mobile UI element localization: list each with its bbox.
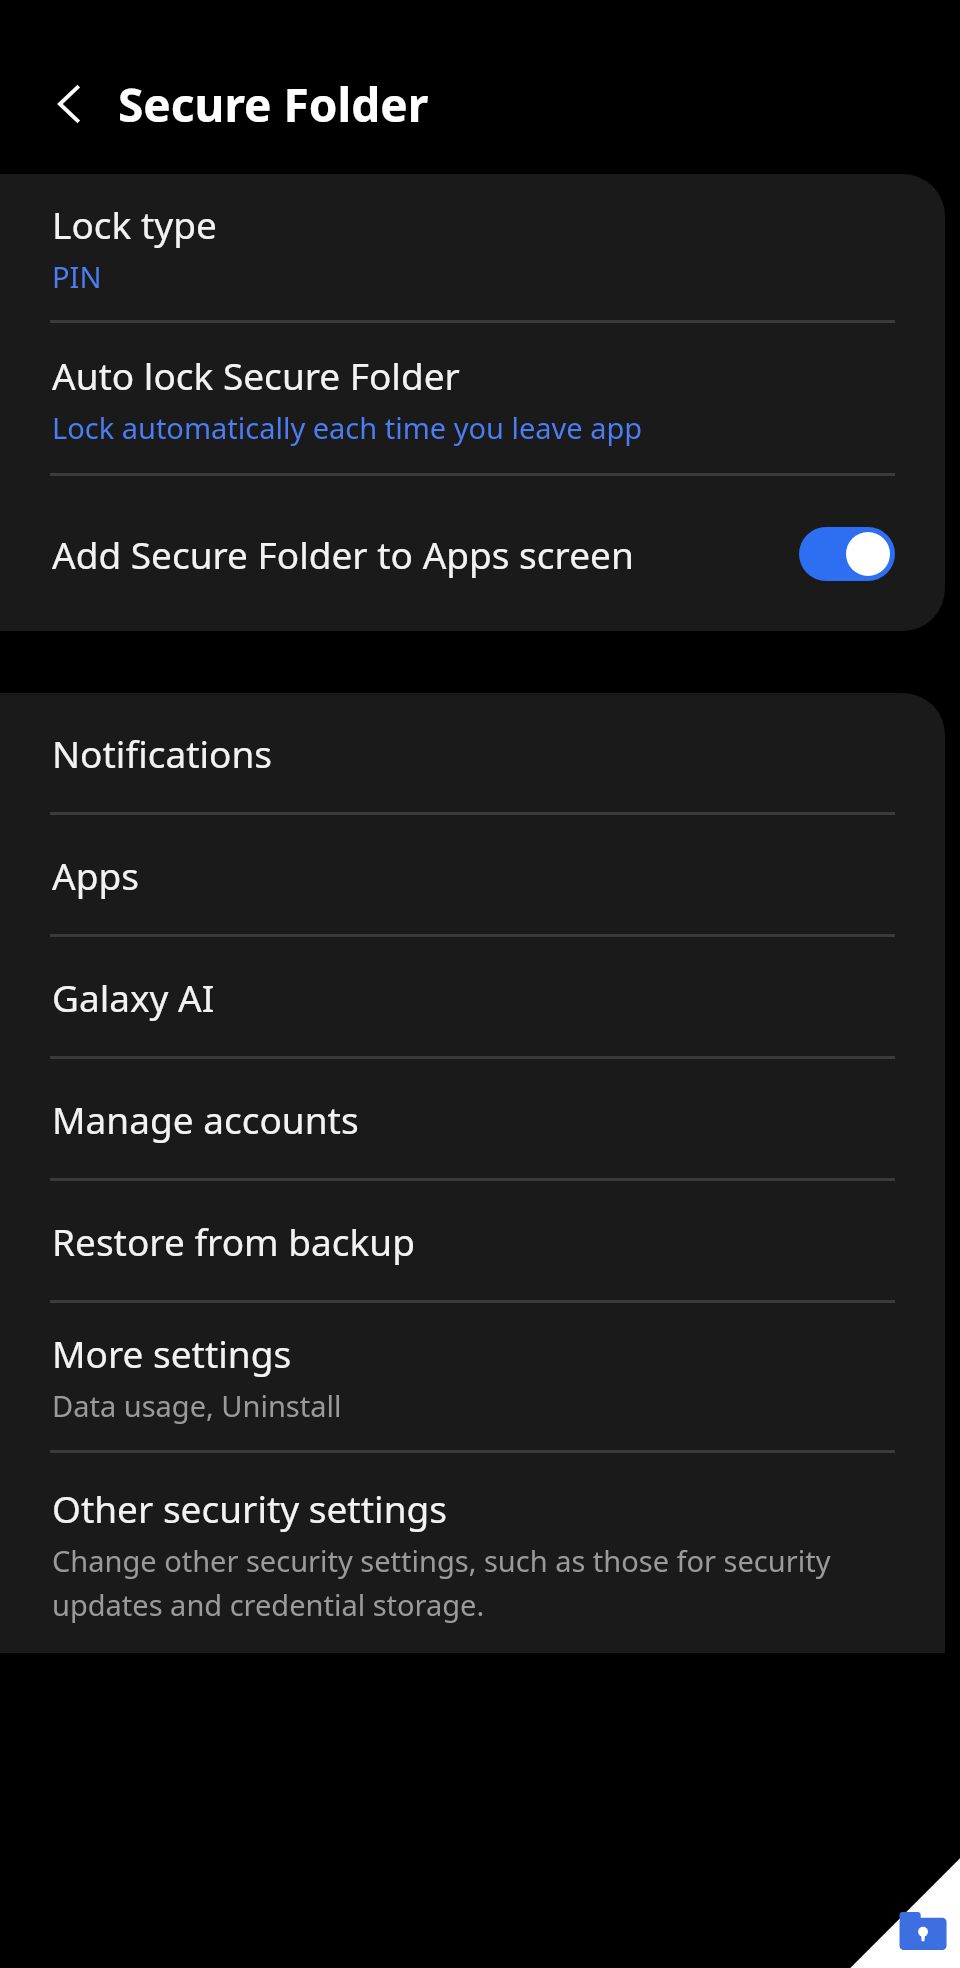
button[interactable]: Restore from backup <box>0 1181 945 1300</box>
button[interactable]: Add Secure Folder to Apps screen <box>0 476 945 631</box>
staticText: Change other security settings, such as … <box>52 1541 905 1624</box>
button[interactable]: Other security settings <box>0 1453 945 1653</box>
button[interactable]: Notifications <box>0 693 945 812</box>
staticText: Lock type <box>52 199 217 249</box>
staticText: Other security settings <box>52 1483 447 1533</box>
staticText: Add Secure Folder to Apps screen <box>52 529 634 579</box>
button[interactable]: Back <box>28 62 112 146</box>
button[interactable]: Apps <box>0 815 945 934</box>
staticText: Manage accounts <box>52 1094 359 1144</box>
staticText: More settings <box>52 1328 292 1378</box>
button[interactable]: More settings <box>0 1303 945 1450</box>
button[interactable]: Add Secure Folder to Apps screen toggle <box>799 527 895 581</box>
staticText: Data usage, Uninstall <box>52 1386 342 1425</box>
staticText: Galaxy AI <box>52 972 215 1022</box>
staticText: Restore from backup <box>52 1216 415 1266</box>
staticText: Apps <box>52 850 139 900</box>
button[interactable]: Galaxy AI <box>0 937 945 1056</box>
button[interactable]: Auto lock Secure Folder <box>0 323 945 473</box>
button[interactable]: Manage accounts <box>0 1059 945 1178</box>
staticText: Notifications <box>52 728 273 778</box>
staticText: Secure Folder <box>118 73 429 136</box>
button[interactable]: Lock type <box>0 174 945 320</box>
staticText: Lock automatically each time you leave a… <box>52 408 643 447</box>
staticText: PIN <box>52 257 102 296</box>
staticText: Auto lock Secure Folder <box>52 350 460 400</box>
